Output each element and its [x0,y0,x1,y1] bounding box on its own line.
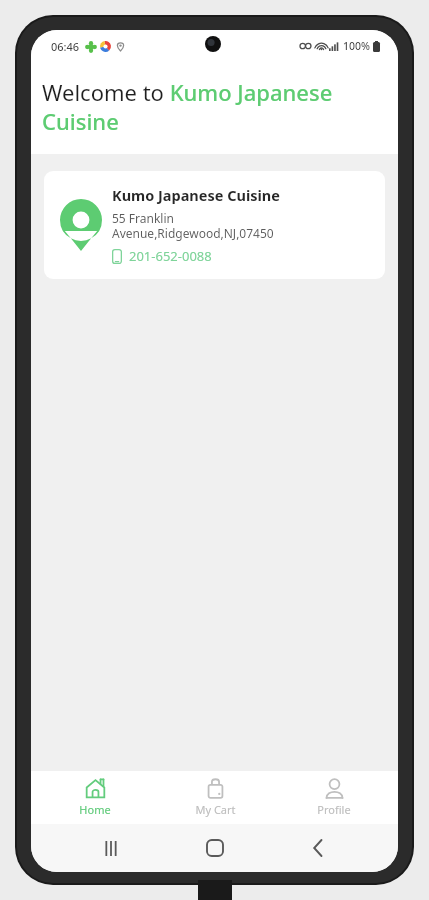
button[interactable]: Home [40,774,150,821]
other: Call [112,249,122,264]
button[interactable]: Call [112,247,212,265]
staticText: Welcome to Kumo Japanese Cuisine [42,77,387,136]
staticText: 55 Franklin Avenue,Ridgewood,NJ,07450 [112,210,274,241]
staticText: Kumo Japanese Cuisine [112,185,280,205]
other: Profile [324,778,345,799]
staticText: 06:46 [51,39,80,54]
button[interactable]: Home [191,824,239,872]
staticText: Profile [317,802,351,817]
button[interactable]: Recent apps [87,824,135,872]
other: Home [85,778,106,799]
button[interactable]: Profile [279,774,389,821]
button[interactable]: My Cart [160,774,270,821]
button[interactable]: Kumo Japanese Cuisine [44,171,385,279]
staticText: My Cart [195,802,236,817]
staticText: 201-652-0088 [129,247,212,265]
staticText: 100% [343,39,370,53]
staticText: Home [79,802,111,817]
button[interactable]: Back [294,824,342,872]
other: My Cart [205,778,226,799]
